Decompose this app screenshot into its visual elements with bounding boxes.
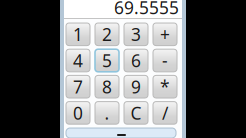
button[interactable]: 6 bbox=[124, 49, 148, 72]
button[interactable]: 4 bbox=[66, 49, 90, 72]
staticText: 1 bbox=[73, 23, 83, 46]
staticText: 4 bbox=[73, 49, 83, 72]
button[interactable]: C bbox=[124, 102, 148, 124]
staticText: 3 bbox=[131, 23, 141, 46]
button[interactable]: 1 bbox=[66, 23, 90, 46]
staticText: 0 bbox=[73, 101, 83, 124]
staticText: 5 bbox=[102, 49, 112, 72]
staticText: 6 bbox=[131, 49, 141, 72]
staticText: * bbox=[160, 75, 170, 98]
button[interactable]: 9 bbox=[124, 75, 148, 98]
button[interactable]: + bbox=[153, 23, 177, 46]
button[interactable]: - bbox=[153, 49, 177, 72]
staticText: 9 bbox=[131, 75, 141, 98]
staticText: . bbox=[104, 101, 109, 124]
button[interactable]: 5 bbox=[95, 49, 119, 72]
staticText: / bbox=[162, 101, 168, 124]
button[interactable]: 7 bbox=[66, 75, 90, 98]
staticText: C bbox=[130, 101, 141, 124]
button[interactable]: 8 bbox=[95, 75, 119, 98]
button[interactable]: 3 bbox=[124, 23, 148, 46]
staticText: 7 bbox=[73, 75, 83, 98]
staticText: 8 bbox=[102, 75, 112, 98]
button[interactable]: 2 bbox=[95, 23, 119, 46]
button[interactable]: 0 bbox=[66, 102, 90, 124]
button[interactable]: . bbox=[95, 102, 119, 124]
button[interactable]: * bbox=[153, 75, 177, 98]
staticText: 2 bbox=[102, 23, 112, 46]
staticText: - bbox=[162, 49, 168, 72]
button[interactable]: / bbox=[153, 102, 177, 124]
staticText: 69.5555 bbox=[114, 0, 179, 19]
staticText: + bbox=[160, 23, 170, 46]
